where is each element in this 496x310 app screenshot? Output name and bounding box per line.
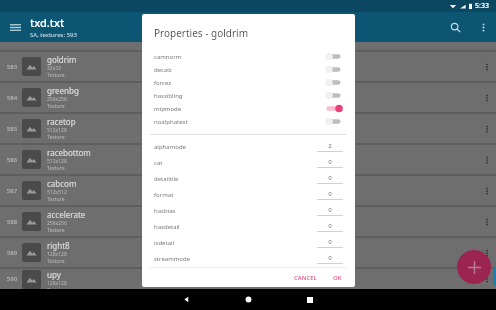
button[interactable]: format xyxy=(154,187,343,203)
staticText: 512x128 xyxy=(47,158,67,165)
staticText: format xyxy=(154,191,317,199)
staticText: accelerate xyxy=(47,209,86,220)
staticText: Texture xyxy=(47,227,65,234)
staticText: decalz xyxy=(154,66,325,74)
button[interactable]: Item options xyxy=(478,176,496,205)
staticText: 583 xyxy=(5,63,19,71)
button[interactable]: 586 xyxy=(0,145,496,174)
staticText: racebottom xyxy=(47,147,91,158)
button[interactable]: OK xyxy=(328,271,347,285)
staticText: 0 xyxy=(317,190,343,198)
staticText: greenbg xyxy=(47,85,79,96)
button[interactable]: Item options xyxy=(478,269,496,289)
button[interactable]: 587 xyxy=(0,176,496,205)
button[interactable]: Item options xyxy=(478,114,496,143)
staticText: Texture xyxy=(47,103,65,110)
button[interactable]: Item options xyxy=(478,145,496,174)
staticText: SA, textures: 593 xyxy=(30,31,77,39)
staticText: 0 xyxy=(317,254,343,262)
staticText: hasbias xyxy=(154,207,317,215)
staticText: OK xyxy=(333,274,342,282)
staticText: forcez xyxy=(154,79,325,87)
staticText: txd.txt xyxy=(30,15,65,30)
staticText: CANCEL xyxy=(294,274,317,282)
staticText: hassibling xyxy=(154,92,325,100)
staticText: 256x256 xyxy=(47,220,67,227)
button[interactable]: 589 xyxy=(0,238,496,267)
staticText: Texture xyxy=(47,258,65,265)
button[interactable]: forcez xyxy=(154,76,343,89)
button[interactable]: 584 xyxy=(0,83,496,112)
button[interactable]: isdetail xyxy=(154,235,343,251)
button[interactable]: mipmode xyxy=(154,102,343,115)
button[interactable]: decalz xyxy=(154,63,343,76)
staticText: Texture xyxy=(47,134,65,141)
staticText: 256x256 xyxy=(47,96,67,103)
staticText: 0 xyxy=(317,206,343,214)
button[interactable]: Item options xyxy=(478,83,496,112)
staticText: noalphatest xyxy=(154,118,325,126)
staticText: 512x512 xyxy=(47,189,67,196)
button[interactable]: noalphatest xyxy=(154,115,343,128)
button[interactable]: alphamode xyxy=(154,139,343,155)
staticText: 128x128 xyxy=(47,251,67,258)
button[interactable]: Item options xyxy=(478,238,496,267)
button[interactable]: Item options xyxy=(478,52,496,81)
button[interactable]: Item options xyxy=(478,207,496,236)
staticText: 0 xyxy=(317,174,343,182)
staticText: Texture xyxy=(47,287,65,289)
button[interactable]: 590 xyxy=(0,269,496,289)
staticText: 512x128 xyxy=(47,127,67,134)
staticText: 0 xyxy=(317,238,343,246)
staticText: 585 xyxy=(5,125,19,133)
button[interactable]: Back xyxy=(169,289,203,310)
button[interactable]: camnorm xyxy=(154,50,343,63)
button[interactable]: CANCEL xyxy=(289,271,322,285)
button[interactable]: 585 xyxy=(0,114,496,143)
staticText: Texture xyxy=(47,72,65,79)
staticText: isdetail xyxy=(154,239,317,247)
button[interactable]: detailtile xyxy=(154,171,343,187)
staticText: upy xyxy=(47,269,61,280)
button[interactable]: hassibling xyxy=(154,89,343,102)
button[interactable]: More options xyxy=(470,14,496,40)
staticText: 0 xyxy=(317,222,343,230)
staticText: 584 xyxy=(5,94,19,102)
staticText: camnorm xyxy=(154,53,325,61)
staticText: Texture xyxy=(47,165,65,172)
staticText: racetop xyxy=(47,116,76,127)
button[interactable]: hasdetail xyxy=(154,219,343,235)
button[interactable]: Recent apps xyxy=(293,289,327,310)
button[interactable]: hasbias xyxy=(154,203,343,219)
staticText: 0 xyxy=(317,158,343,166)
staticText: 2 xyxy=(317,142,343,150)
button[interactable]: cat xyxy=(154,155,343,171)
staticText: 588 xyxy=(5,218,19,226)
staticText: 5:33 xyxy=(475,1,489,11)
staticText: 589 xyxy=(5,249,19,257)
staticText: 590 xyxy=(5,275,19,283)
button[interactable]: Home xyxy=(231,289,265,310)
staticText: alphamode xyxy=(154,143,317,151)
staticText: streammode xyxy=(154,255,317,263)
staticText: goldrim xyxy=(47,54,77,65)
staticText: right8 xyxy=(47,240,70,251)
staticText: Properties - goldrim xyxy=(154,26,248,40)
staticText: 587 xyxy=(5,187,19,195)
staticText: 586 xyxy=(5,156,19,164)
button[interactable]: Search xyxy=(440,12,470,42)
staticText: 32x32 xyxy=(47,65,62,72)
staticText: 128x128 xyxy=(47,280,67,287)
staticText: cabcom xyxy=(47,178,77,189)
staticText: cat xyxy=(154,159,317,167)
button[interactable]: 588 xyxy=(0,207,496,236)
button[interactable]: Add xyxy=(457,250,491,284)
staticText: Texture xyxy=(47,196,65,203)
button[interactable]: streammode xyxy=(154,251,343,267)
staticText: mipmode xyxy=(154,105,325,113)
button[interactable]: Navigation menu xyxy=(0,12,30,42)
staticText: hasdetail xyxy=(154,223,317,231)
button[interactable]: 583 xyxy=(0,52,496,81)
staticText: detailtile xyxy=(154,175,317,183)
